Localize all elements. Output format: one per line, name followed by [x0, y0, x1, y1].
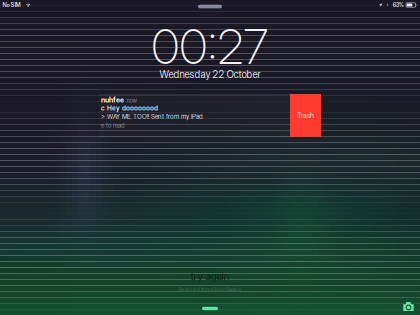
staticText: try again: [190, 270, 229, 283]
button[interactable]: Camera: [403, 302, 414, 311]
staticText: now: [127, 97, 137, 104]
staticText: Restoring from iCloud Backup: [179, 287, 241, 292]
staticText: e to read: [101, 122, 124, 129]
staticText: c Hey doooooood: [101, 104, 158, 112]
button[interactable]: Trash: [290, 94, 321, 137]
staticText: nuhfee: [101, 95, 124, 104]
staticText: > WAY ME TOO!! Sent from my iPad: [101, 112, 203, 120]
staticText: 00:27: [151, 17, 268, 76]
staticText: Trash: [297, 111, 314, 120]
button[interactable]: nuhfee: [99, 94, 290, 137]
staticText: No SIM: [3, 1, 21, 8]
staticText: Wednesday 22 October: [159, 68, 260, 80]
staticText: 63%: [393, 2, 404, 8]
